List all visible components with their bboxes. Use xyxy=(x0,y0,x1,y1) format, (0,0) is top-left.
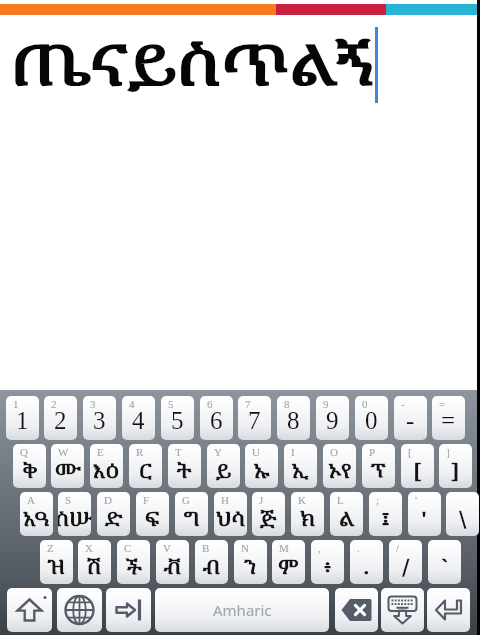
staticText: = xyxy=(439,398,446,410)
button[interactable]: Q xyxy=(13,444,46,488)
staticText: ስሡ xyxy=(58,506,91,532)
staticText: ሽ xyxy=(87,554,102,580)
button[interactable]: O xyxy=(323,444,356,488)
staticText: ኢ xyxy=(292,458,309,484)
button[interactable]: Shift xyxy=(7,588,52,632)
button[interactable]: J xyxy=(252,492,285,536)
button[interactable]: I xyxy=(284,444,317,488)
button[interactable]: Y xyxy=(207,444,240,488)
button[interactable]: ' xyxy=(408,492,441,536)
button[interactable]: - xyxy=(394,396,427,440)
staticText: - xyxy=(401,398,405,410)
staticText: ች xyxy=(126,554,142,580)
button[interactable]: K xyxy=(291,492,324,536)
button[interactable]: M xyxy=(272,540,305,584)
staticText: 3 xyxy=(93,407,106,435)
staticText: S xyxy=(65,494,72,506)
button[interactable]: T xyxy=(168,444,201,488)
button[interactable]: 4 xyxy=(122,396,155,440)
staticText: D xyxy=(104,494,112,506)
button[interactable]: 2 xyxy=(44,396,77,440)
staticText: J xyxy=(259,494,264,506)
button[interactable]: Delete xyxy=(335,588,378,632)
button[interactable]: ] xyxy=(439,444,472,488)
button[interactable]: C xyxy=(117,540,150,584)
button[interactable]: \ xyxy=(446,492,479,536)
button[interactable]: 7 xyxy=(238,396,271,440)
staticText: 0 xyxy=(362,398,368,410)
staticText: F xyxy=(143,494,150,506)
button[interactable]: 9 xyxy=(316,396,349,440)
button[interactable]: Z xyxy=(40,540,73,584)
staticText: 9 xyxy=(323,398,329,410)
button[interactable]: H xyxy=(214,492,247,536)
button[interactable]: G xyxy=(175,492,208,536)
staticText: Y xyxy=(214,446,222,458)
button[interactable]: X xyxy=(78,540,111,584)
staticText: ር xyxy=(139,458,153,484)
button[interactable]: 0 xyxy=(355,396,388,440)
staticText: , xyxy=(318,542,321,554)
staticText: ይ xyxy=(216,458,231,484)
staticText: I xyxy=(291,446,295,458)
staticText: G xyxy=(182,494,190,506)
staticText: ' xyxy=(421,506,427,532)
button[interactable]: Enter xyxy=(427,588,470,632)
button[interactable]: 3 xyxy=(83,396,116,440)
button[interactable]: V xyxy=(156,540,189,584)
staticText: 4 xyxy=(132,407,145,435)
staticText: Amharic xyxy=(213,600,272,620)
button[interactable]: B xyxy=(195,540,228,584)
button[interactable]: Hide keyboard xyxy=(381,588,424,632)
button[interactable]: [ xyxy=(401,444,434,488)
staticText: [ xyxy=(408,446,412,458)
staticText: ሙ xyxy=(55,458,81,484)
button[interactable]: Tab xyxy=(106,588,151,632)
staticText: O xyxy=(330,446,338,458)
staticText: ' xyxy=(415,494,417,506)
staticText: Z xyxy=(47,542,54,554)
staticText: 4 xyxy=(129,398,135,410)
staticText: \ xyxy=(459,506,467,532)
button[interactable]: S xyxy=(58,492,91,536)
button[interactable]: 1 xyxy=(6,396,39,440)
staticText: ኡ xyxy=(254,458,270,484)
staticText: ም xyxy=(278,554,299,580)
button[interactable]: D xyxy=(97,492,130,536)
button[interactable]: = xyxy=(432,396,465,440)
button[interactable]: 5 xyxy=(161,396,194,440)
staticText: አዓ xyxy=(23,506,50,532)
button[interactable]: E xyxy=(90,444,123,488)
button[interactable]: P xyxy=(362,444,395,488)
button[interactable]: , xyxy=(311,540,344,584)
staticText: እዕ xyxy=(93,458,120,484)
button[interactable]: R xyxy=(129,444,162,488)
button[interactable]: A xyxy=(20,492,53,536)
button[interactable]: Amharic xyxy=(155,588,329,632)
button[interactable]: L xyxy=(330,492,363,536)
staticText: ፍ xyxy=(145,506,160,532)
button[interactable]: U xyxy=(245,444,278,488)
button[interactable]: ` xyxy=(428,540,461,584)
button[interactable]: ; xyxy=(369,492,402,536)
button[interactable]: 8 xyxy=(277,396,310,440)
staticText: ፕ xyxy=(371,458,386,484)
button[interactable]: Change language xyxy=(57,588,102,632)
button[interactable]: N xyxy=(234,540,267,584)
staticText: 1 xyxy=(16,407,29,435)
button[interactable]: W xyxy=(51,444,84,488)
staticText: ዝ xyxy=(48,554,66,580)
staticText: B xyxy=(202,542,210,554)
staticText: C xyxy=(124,542,132,554)
staticText: ኦየ xyxy=(328,458,352,484)
staticText: 1 xyxy=(13,398,19,410)
staticText: ቭ xyxy=(164,554,182,580)
button[interactable]: / xyxy=(389,540,422,584)
staticText: 6 xyxy=(210,407,223,435)
button[interactable]: F xyxy=(136,492,169,536)
staticText: V xyxy=(163,542,171,554)
button[interactable]: . xyxy=(350,540,383,584)
button[interactable]: 6 xyxy=(200,396,233,440)
staticText: ] xyxy=(451,458,460,484)
staticText: K xyxy=(298,494,306,506)
